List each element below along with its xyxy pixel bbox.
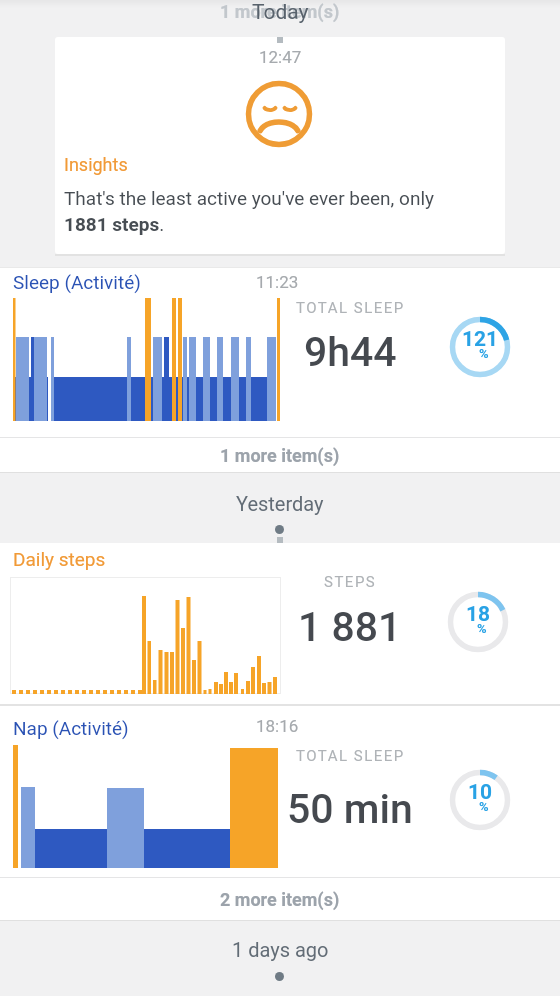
staticText: Today: [252, 0, 309, 25]
staticText: 18:16: [256, 716, 299, 736]
staticText: 12:47: [259, 47, 302, 67]
staticText: Insights: [64, 154, 128, 175]
button[interactable]: 1 more item(s): [0, 438, 560, 472]
staticText: %: [479, 799, 489, 814]
button[interactable]: Sleep (Activité): [0, 268, 560, 437]
staticText: Yesterday: [236, 492, 324, 515]
button[interactable]: 12:47: [55, 37, 505, 254]
staticText: Daily steps: [13, 548, 106, 570]
staticText: 121: [462, 327, 499, 352]
staticText: That's the least active you've ever been…: [64, 187, 434, 235]
staticText: %: [477, 621, 487, 636]
staticText: Sleep (Activité): [13, 271, 141, 293]
staticText: 11:23: [256, 272, 299, 292]
staticText: 1 more item(s): [220, 1, 340, 22]
staticText: 2 more item(s): [220, 889, 340, 910]
staticText: STEPS: [324, 573, 377, 591]
staticText: 9h44: [304, 328, 397, 376]
button[interactable]: Nap (Activité): [0, 706, 560, 877]
staticText: 1 more item(s): [220, 445, 340, 466]
staticText: 10: [468, 780, 493, 805]
staticText: 50 min: [287, 785, 413, 833]
staticText: 1 days ago: [232, 938, 329, 961]
button[interactable]: 2 more item(s): [0, 878, 560, 920]
staticText: TOTAL SLEEP: [296, 747, 405, 765]
staticText: 1 881: [298, 603, 402, 651]
staticText: TOTAL SLEEP: [296, 299, 405, 317]
staticText: %: [479, 346, 489, 361]
staticText: Nap (Activité): [13, 717, 129, 739]
staticText: 18: [466, 602, 491, 627]
button[interactable]: Daily steps: [0, 543, 560, 704]
